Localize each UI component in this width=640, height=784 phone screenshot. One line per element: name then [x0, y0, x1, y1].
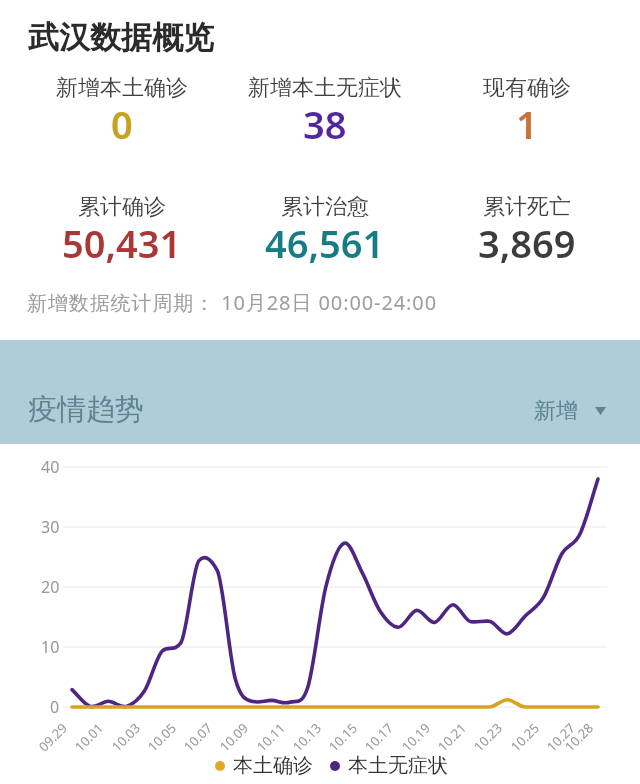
staticText: 20 — [41, 576, 60, 598]
staticText: 10.17 — [361, 719, 397, 755]
staticText: 10.11 — [253, 719, 289, 755]
staticText: 现有确诊 — [483, 74, 571, 102]
button[interactable] — [215, 193, 435, 263]
staticText: 10.03 — [108, 719, 144, 755]
staticText: 10 — [41, 636, 60, 658]
staticText: 46,561 — [265, 217, 385, 269]
staticText: 新增本土无症状 — [248, 74, 402, 102]
button[interactable]: 本土确诊 — [215, 753, 448, 778]
staticText: 新增 — [534, 397, 578, 425]
button[interactable] — [417, 74, 637, 144]
staticText: 1 — [516, 98, 538, 150]
staticText: 10.15 — [325, 719, 361, 755]
staticText: 累计死亡 — [483, 193, 571, 221]
staticText: 09.29 — [35, 719, 71, 755]
other: Select metric — [595, 407, 606, 415]
staticText: 本土确诊 — [233, 753, 313, 778]
staticText: 累计治愈 — [281, 193, 369, 221]
staticText: 50,431 — [62, 217, 182, 269]
staticText: 10.19 — [398, 719, 434, 755]
staticText: 40 — [41, 456, 60, 478]
staticText: 3,869 — [478, 217, 576, 269]
button[interactable] — [215, 74, 435, 144]
staticText: 10.21 — [434, 719, 470, 755]
staticText: 新增数据统计周期： 10月28日 00:00-24:00 — [27, 289, 438, 316]
staticText: 0 — [111, 98, 133, 150]
staticText: 10.09 — [216, 719, 252, 755]
staticText: 10.23 — [470, 719, 506, 755]
staticText: 10.01 — [71, 719, 107, 755]
staticText: 10.05 — [144, 719, 180, 755]
staticText: 疫情趋势 — [28, 391, 144, 428]
staticText: 38 — [303, 98, 347, 150]
staticText: 新增本土确诊 — [56, 74, 188, 102]
staticText: 本土无症状 — [348, 753, 448, 778]
button[interactable] — [12, 193, 232, 263]
staticText: 0 — [50, 696, 60, 718]
staticText: 30 — [41, 516, 60, 538]
button[interactable] — [12, 74, 232, 144]
staticText: 武汉数据概览 — [28, 18, 214, 57]
button[interactable]: 新增 — [534, 397, 606, 425]
staticText: 10.07 — [180, 719, 216, 755]
staticText: 10.27 — [543, 719, 579, 755]
staticText: 10.25 — [507, 719, 543, 755]
staticText: 累计确诊 — [78, 193, 166, 221]
staticText: 10.13 — [289, 719, 325, 755]
button[interactable] — [417, 193, 637, 263]
staticText: 10.28 — [561, 719, 597, 755]
